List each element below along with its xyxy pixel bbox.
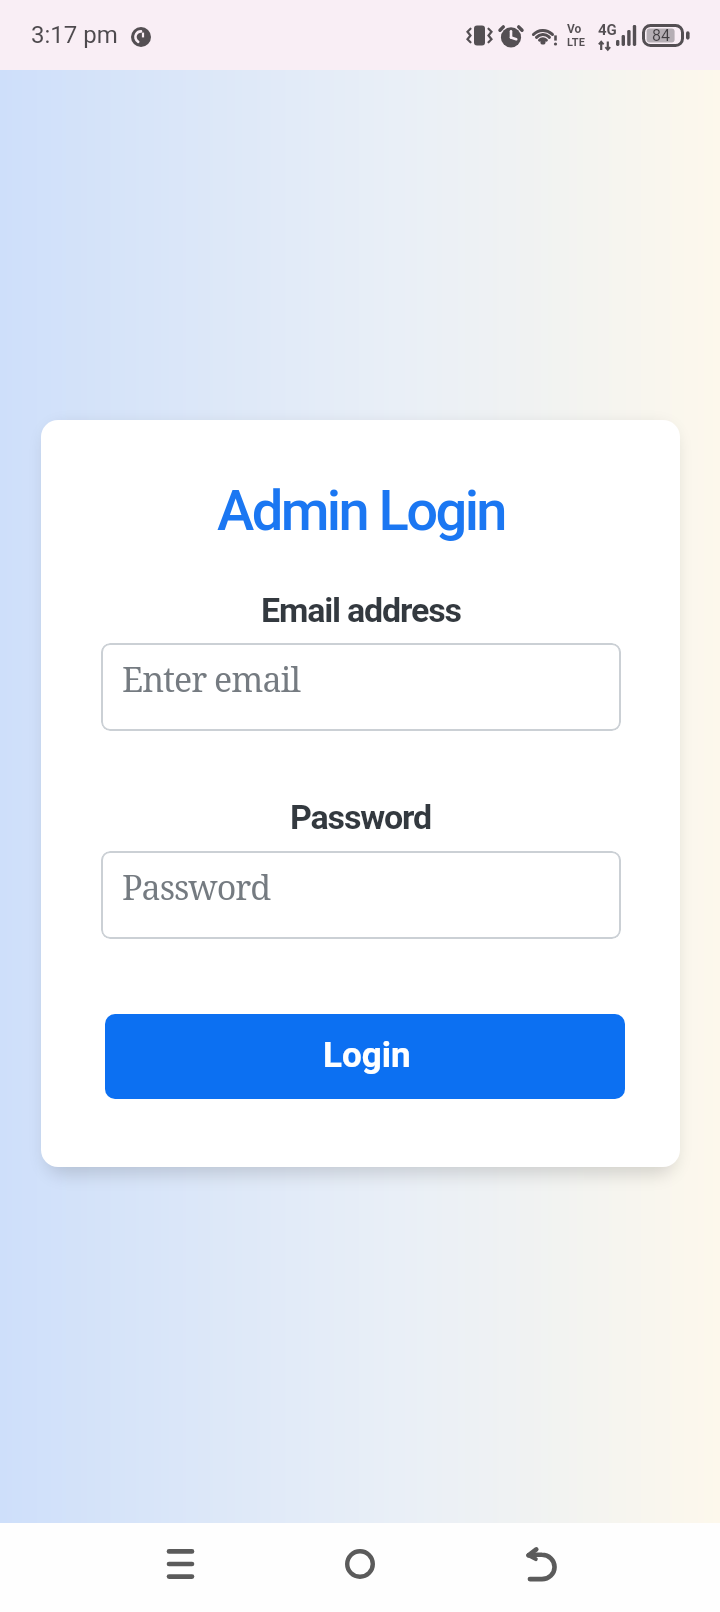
staticText: 84 [652,26,670,45]
staticText: Password [122,864,271,910]
button[interactable]: Login [105,1014,625,1099]
staticText: Password [290,797,431,837]
button[interactable] [495,1523,585,1612]
button[interactable] [135,1523,225,1612]
staticText: 4G [598,21,617,39]
staticText: Login [323,1035,411,1076]
staticText: LTE [567,36,585,49]
staticText: Admin Login [217,478,505,544]
staticText: 3:17 pm [31,21,118,49]
button[interactable]: Enter email [101,643,621,731]
button[interactable] [315,1523,405,1612]
staticText: Vo [567,22,582,36]
staticText: Enter email [122,656,301,702]
button[interactable]: Password [101,851,621,939]
staticText: Email address [261,590,461,630]
